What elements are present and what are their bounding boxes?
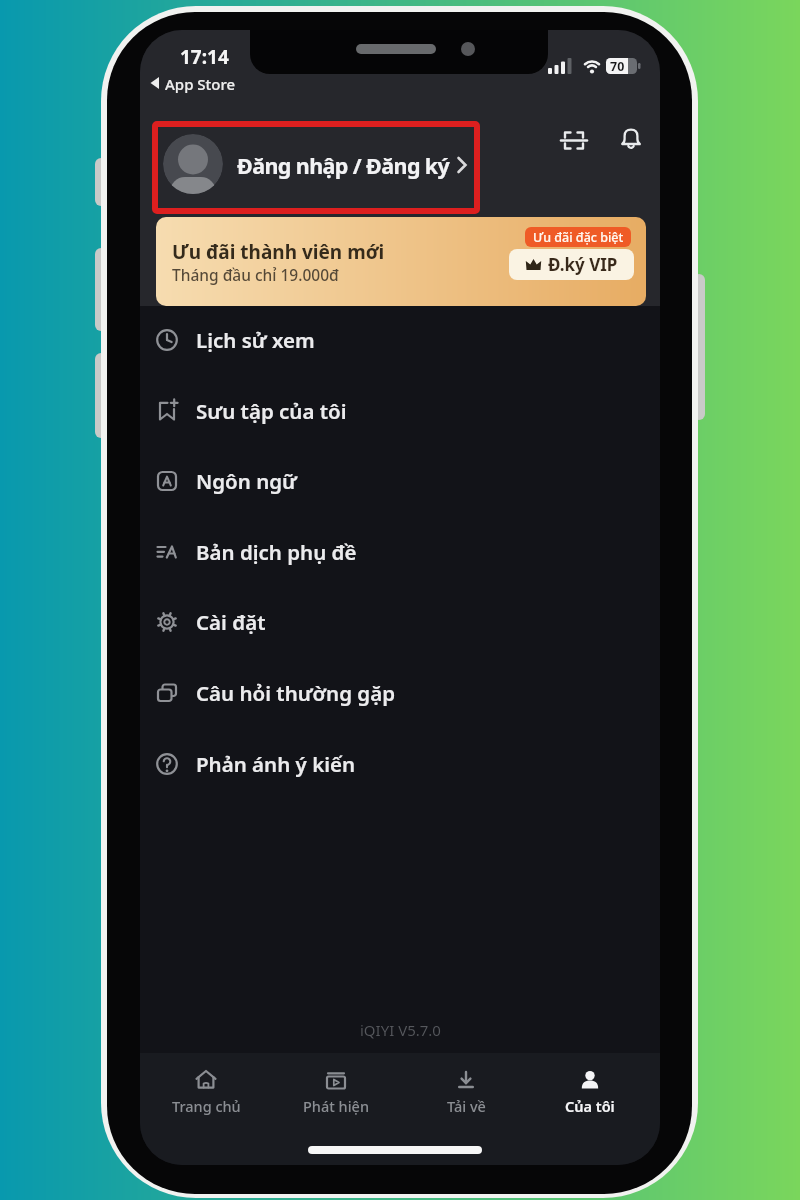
- staticText: Đăng nhập / Đăng ký: [237, 151, 450, 180]
- button[interactable]: Cài đặt: [140, 587, 660, 657]
- button[interactable]: Bản dịch phụ đề: [140, 517, 660, 587]
- staticText: Sưu tập của tôi: [196, 397, 347, 425]
- button[interactable]: Của tôi: [530, 1055, 650, 1125]
- staticText: Phản ánh ý kiến: [196, 750, 356, 778]
- staticText: Ưu đãi đặc biệt: [533, 229, 624, 246]
- staticText: Lịch sử xem: [196, 326, 315, 354]
- staticText: Ưu đãi thành viên mới: [172, 239, 385, 265]
- staticText: Phát hiện: [303, 1096, 369, 1116]
- staticText: Cài đặt: [196, 608, 266, 636]
- staticText: Tải về: [447, 1096, 486, 1116]
- button[interactable]: Trang chủ: [146, 1055, 266, 1125]
- staticText: Bản dịch phụ đề: [196, 538, 357, 566]
- staticText: App Store: [165, 74, 236, 94]
- button[interactable]: Sưu tập của tôi: [140, 376, 660, 446]
- staticText: 17:14: [180, 44, 229, 68]
- button[interactable]: [155, 124, 477, 211]
- staticText: 70: [610, 58, 625, 74]
- button[interactable]: [156, 217, 646, 306]
- button[interactable]: Tải về: [406, 1055, 526, 1125]
- button[interactable]: Lịch sử xem: [140, 305, 660, 375]
- staticText: Câu hỏi thường gặp: [196, 679, 395, 707]
- button[interactable]: Ngôn ngữ: [140, 446, 660, 516]
- button[interactable]: [613, 121, 649, 157]
- button[interactable]: Đ.ký VIP: [509, 249, 634, 280]
- button[interactable]: Phát hiện: [276, 1055, 396, 1125]
- staticText: Đ.ký VIP: [548, 253, 618, 276]
- button[interactable]: Phản ánh ý kiến: [140, 729, 660, 799]
- button[interactable]: Câu hỏi thường gặp: [140, 658, 660, 728]
- staticText: iQIYI V5.7.0: [360, 1020, 441, 1040]
- staticText: Trang chủ: [172, 1096, 241, 1116]
- staticText: Tháng đầu chỉ 19.000đ: [172, 264, 339, 285]
- button[interactable]: [556, 122, 592, 158]
- staticText: Của tôi: [565, 1096, 615, 1116]
- staticText: Ngôn ngữ: [196, 467, 297, 495]
